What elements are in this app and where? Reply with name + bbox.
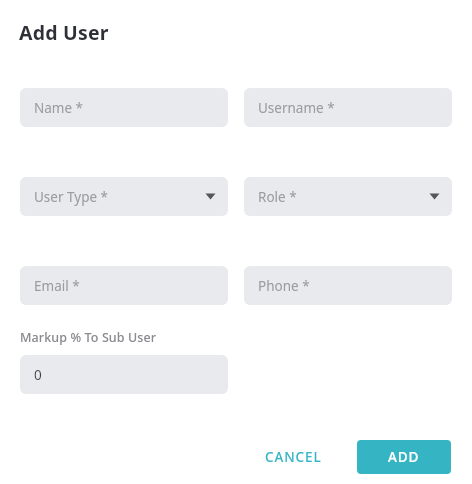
staticText: Email * — [34, 277, 80, 295]
button[interactable]: Name field — [20, 88, 228, 127]
button[interactable]: Email field — [20, 266, 228, 305]
button[interactable]: ADD — [357, 440, 451, 474]
staticText: Add User — [19, 19, 109, 46]
staticText: 0 — [34, 366, 42, 384]
button[interactable]: Username field — [244, 88, 452, 127]
button[interactable]: Phone field — [244, 266, 452, 305]
button[interactable]: CANCEL — [250, 440, 336, 474]
staticText: CANCEL — [265, 448, 322, 466]
button[interactable]: User Type dropdown — [20, 177, 228, 216]
button[interactable]: Role dropdown — [244, 177, 452, 216]
staticText: Name * — [34, 99, 84, 117]
button[interactable]: Markup percent field — [20, 355, 228, 394]
staticText: ADD — [388, 448, 420, 466]
staticText: Role * — [258, 188, 297, 206]
staticText: Username * — [258, 99, 335, 117]
staticText: Phone * — [258, 277, 310, 295]
staticText: User Type * — [34, 188, 109, 206]
staticText: Markup % To Sub User — [20, 329, 157, 346]
